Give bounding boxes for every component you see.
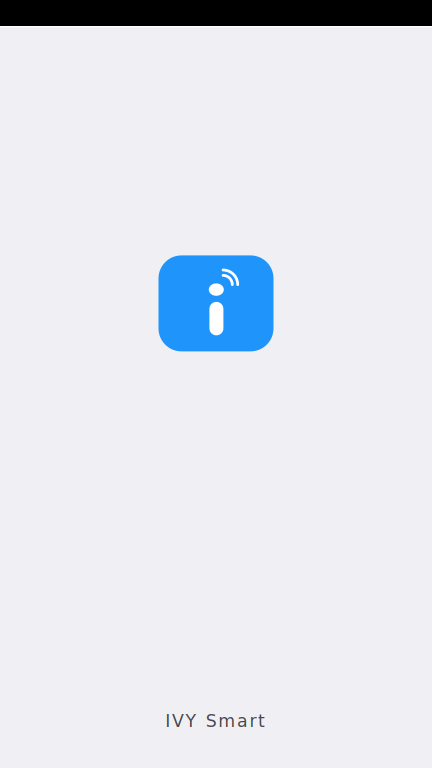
staticText: IVY Smart <box>165 711 265 731</box>
